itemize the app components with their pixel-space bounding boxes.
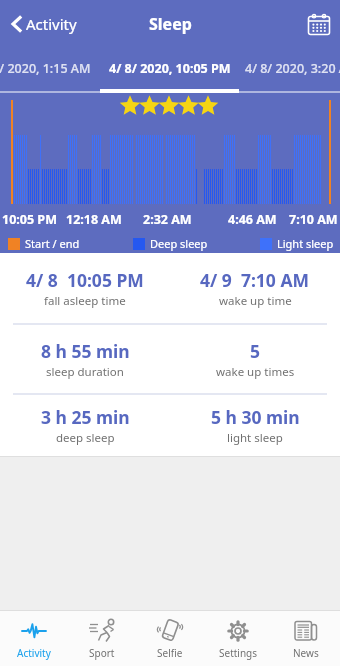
staticText: News	[293, 646, 319, 660]
staticText: 3 h 25 min	[41, 405, 130, 429]
button[interactable]: 4/ 8/ 2020, 10:05 PM	[109, 60, 231, 77]
staticText: Light sleep	[277, 236, 334, 251]
staticText: fall asleep time	[44, 293, 126, 309]
staticText: 7:10 AM	[289, 211, 338, 228]
staticText: Settings	[219, 646, 258, 660]
staticText: sleep duration	[46, 364, 124, 380]
staticText: light sleep	[227, 430, 283, 446]
staticText: Selfie	[157, 646, 183, 660]
staticText: 12:18 AM	[66, 211, 122, 228]
staticText: Sport	[89, 646, 115, 660]
button[interactable]: Selfie	[136, 611, 204, 666]
button[interactable]: Activity	[0, 611, 68, 666]
staticText: Sleep	[149, 13, 192, 35]
staticText: 4/ 7/ 2020, 1:15 AM	[0, 60, 91, 77]
button[interactable]: Activity	[0, 14, 77, 34]
staticText: wake up time	[219, 293, 292, 309]
staticText: 4/ 8 10:05 PM	[26, 268, 144, 292]
button[interactable]: News	[272, 611, 340, 666]
button[interactable]	[307, 12, 340, 36]
staticText: deep sleep	[56, 430, 115, 446]
staticText: Start / end	[25, 236, 80, 251]
staticText: 4:46 AM	[228, 211, 277, 228]
staticText: Activity	[17, 646, 51, 660]
staticText: 4/ 9 7:10 AM	[200, 268, 310, 292]
staticText: 2:32 AM	[143, 211, 192, 228]
button[interactable]: Settings	[204, 611, 272, 666]
button[interactable]: Sport	[68, 611, 136, 666]
staticText: 8 h 55 min	[41, 339, 130, 363]
staticText: Activity	[26, 14, 77, 34]
staticText: wake up times	[216, 364, 295, 380]
staticText: 5	[250, 339, 261, 363]
staticText: 5 h 30 min	[211, 405, 300, 429]
staticText: 4/ 8/ 2020, 3:20 AM	[245, 60, 340, 77]
staticText: 10:05 PM	[2, 211, 57, 228]
staticText: Deep sleep	[150, 236, 208, 251]
